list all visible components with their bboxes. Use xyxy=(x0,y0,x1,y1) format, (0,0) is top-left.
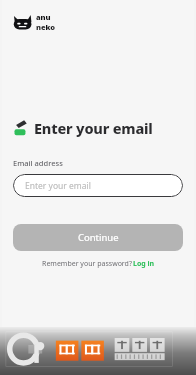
staticText: Continue xyxy=(78,231,119,244)
button[interactable]: Continue xyxy=(13,224,183,251)
staticText: Remember your password? xyxy=(41,259,133,269)
staticText: Email address xyxy=(13,158,63,168)
staticText: Log in xyxy=(133,259,155,269)
staticText: neko xyxy=(36,22,55,32)
staticText: anu xyxy=(36,12,51,22)
staticText: Enter your email xyxy=(25,180,91,192)
button[interactable]: Log in xyxy=(133,259,155,269)
staticText: Enter your email xyxy=(34,118,153,138)
button[interactable]: anu neko home xyxy=(13,12,55,32)
button[interactable]: Enter your email xyxy=(13,174,183,197)
